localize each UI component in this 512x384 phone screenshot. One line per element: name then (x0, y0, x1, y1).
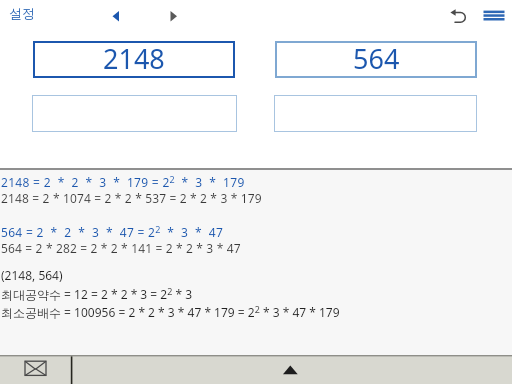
button[interactable] (161, 4, 187, 30)
button[interactable] (103, 4, 129, 30)
staticText: 최소공배수 = 100956 = 2 * 2 * 3 * 47 * 179 = … (1, 303, 340, 321)
staticText: (2148, 564) (1, 267, 63, 283)
button[interactable]: 564 (275, 41, 477, 78)
button[interactable]: 설정 (4, 3, 44, 25)
staticText: 564 = 2 * 282 = 2 * 2 * 141 = 2 * 2 * 3 … (1, 240, 241, 256)
staticText: 2148 (103, 40, 165, 77)
button[interactable] (32, 95, 237, 132)
staticText: 564 (353, 40, 400, 77)
button[interactable]: 2148 (33, 41, 235, 78)
staticText: 564 = 2 * 2 * 3 * 47 = 22 * 3 * 47 (1, 223, 224, 240)
staticText: 설정 (9, 5, 35, 21)
button[interactable] (276, 355, 306, 384)
staticText: 2148 = 2 * 1074 = 2 * 2 * 537 = 2 * 2 * … (1, 190, 262, 206)
button[interactable] (446, 2, 472, 28)
staticText: 2148 = 2 * 2 * 3 * 179 = 22 * 3 * 179 (1, 173, 245, 190)
button[interactable] (274, 95, 477, 132)
button[interactable] (0, 355, 70, 384)
button[interactable] (479, 2, 509, 28)
staticText: 최대공약수 = 12 = 2 * 2 * 3 = 22 * 3 (1, 285, 193, 303)
